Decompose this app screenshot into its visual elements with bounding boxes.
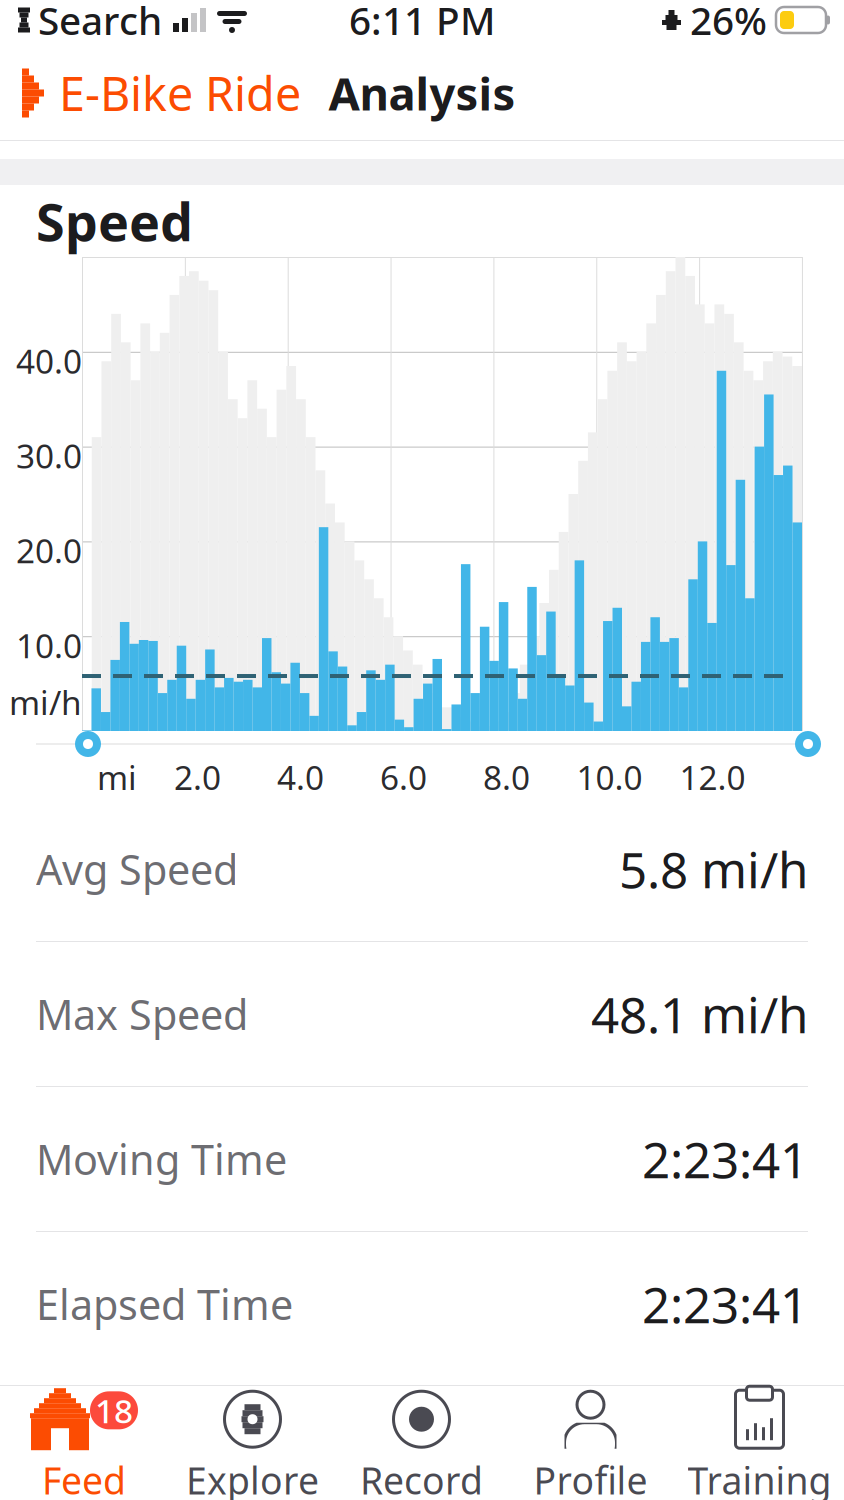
staticText: Analysis: [328, 63, 515, 123]
staticText: 20.0: [16, 528, 82, 573]
button[interactable]: Avg Speed: [0, 797, 844, 942]
staticText: 10.0: [576, 755, 642, 799]
staticText: mi: [97, 755, 137, 799]
staticText: 48.1 mi/h: [591, 981, 808, 1047]
button[interactable]: Max Speed: [0, 942, 844, 1087]
staticText: 2:23:41: [642, 1126, 808, 1192]
staticText: 8.0: [483, 755, 530, 799]
staticText: 4.0: [277, 755, 324, 799]
staticText: 2.0: [174, 755, 221, 799]
staticText: Record: [360, 1455, 483, 1500]
button[interactable]: Record: [337, 1386, 506, 1500]
staticText: 30.0: [16, 433, 82, 478]
staticText: 6.0: [380, 755, 427, 799]
staticText: 40.0: [16, 339, 82, 383]
button[interactable]: 18: [0, 1386, 168, 1500]
button[interactable]: Moving Time: [0, 1087, 844, 1232]
button[interactable]: E-Bike Ride: [0, 45, 317, 141]
staticText: Max Speed: [36, 987, 248, 1041]
button[interactable]: Profile: [506, 1386, 675, 1500]
staticText: Search: [38, 0, 162, 46]
button[interactable]: Training: [675, 1386, 844, 1500]
staticText: 10.0: [16, 623, 82, 667]
staticText: 12.0: [679, 755, 745, 799]
staticText: Training: [687, 1455, 831, 1500]
button[interactable]: Elapsed Time: [0, 1232, 844, 1377]
staticText: E-Bike Ride: [59, 62, 301, 124]
staticText: Elapsed Time: [36, 1277, 293, 1331]
staticText: Feed: [42, 1455, 126, 1500]
staticText: Explore: [186, 1455, 319, 1500]
staticText: Speed: [36, 186, 193, 256]
staticText: Profile: [533, 1455, 647, 1500]
staticText: mi/h: [9, 680, 82, 724]
staticText: 2:23:41: [642, 1271, 808, 1337]
staticText: 18: [95, 1388, 133, 1432]
button[interactable]: Explore: [168, 1386, 337, 1500]
staticText: 6:11 PM: [349, 0, 495, 46]
staticText: 5.8 mi/h: [619, 836, 808, 902]
staticText: 26%: [690, 0, 767, 46]
staticText: Avg Speed: [36, 842, 238, 896]
staticText: Moving Time: [36, 1132, 287, 1186]
